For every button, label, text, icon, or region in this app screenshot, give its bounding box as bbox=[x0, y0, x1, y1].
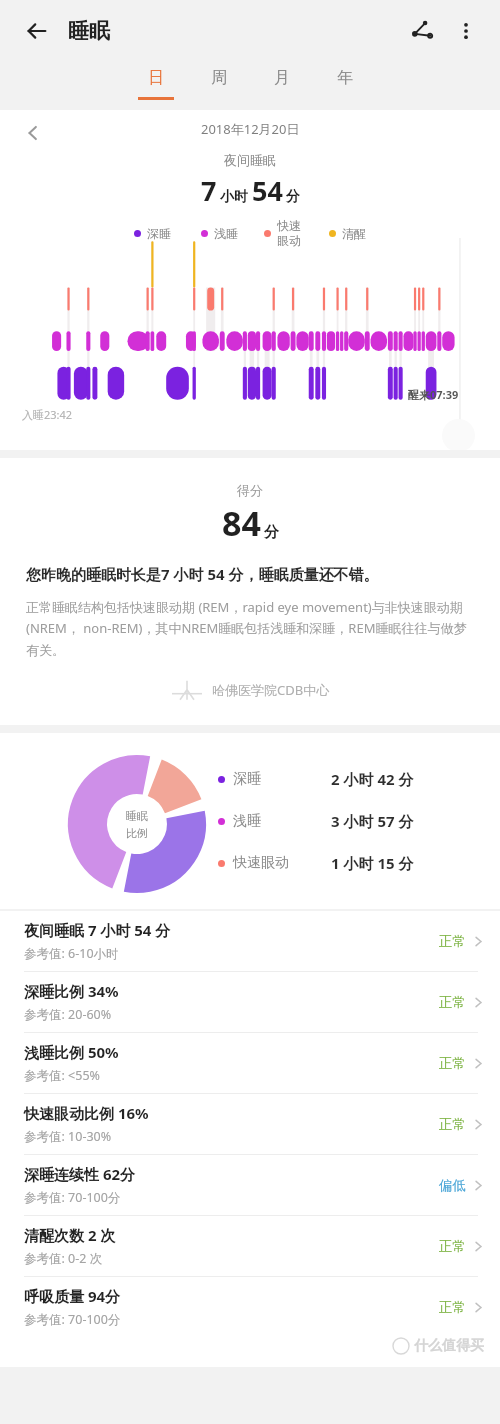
button[interactable]: 月 bbox=[250, 62, 313, 108]
staticText: 哈佛医学院CDB中心 bbox=[212, 681, 330, 699]
staticText: 7 bbox=[201, 172, 217, 209]
staticText: 正常 bbox=[439, 933, 466, 950]
staticText: 得分 bbox=[237, 482, 263, 498]
button[interactable]: Back bbox=[18, 12, 56, 50]
staticText: 正常 bbox=[439, 1238, 466, 1255]
staticText: 参考值: 70-100分 bbox=[24, 1189, 121, 1206]
button[interactable]: 浅睡比例 50% bbox=[0, 1033, 500, 1093]
staticText: 浅睡 bbox=[233, 812, 261, 830]
staticText: 浅睡 bbox=[214, 226, 238, 241]
button[interactable]: 夜间睡眠 7 小时 54 分 bbox=[0, 911, 500, 971]
button[interactable]: 周 bbox=[187, 62, 250, 108]
button[interactable]: 呼吸质量 94分 bbox=[0, 1277, 500, 1337]
staticText: 月 bbox=[274, 68, 290, 88]
staticText: 年 bbox=[337, 68, 353, 88]
staticText: 2 小时 42 分 bbox=[331, 769, 414, 789]
staticText: 偏低 bbox=[439, 1177, 466, 1194]
staticText: 参考值: 6-10小时 bbox=[24, 945, 119, 962]
staticText: 分 bbox=[264, 523, 279, 542]
button[interactable]: Share bbox=[402, 11, 442, 51]
staticText: 睡眠 bbox=[68, 18, 110, 44]
staticText: 2018年12月20日 bbox=[201, 120, 300, 138]
staticText: 参考值: 20-60% bbox=[24, 1006, 112, 1023]
staticText: 什么值得买 bbox=[414, 1337, 484, 1355]
staticText: 深睡 bbox=[233, 770, 261, 788]
staticText: 参考值: 0-2 次 bbox=[24, 1250, 103, 1267]
button[interactable]: 深睡连续性 62分 bbox=[0, 1155, 500, 1215]
staticText: 呼吸质量 94分 bbox=[24, 1286, 121, 1306]
staticText: 您昨晚的睡眠时长是7 小时 54 分，睡眠质量还不错。 bbox=[26, 564, 379, 584]
staticText: 眼动 bbox=[277, 233, 301, 248]
staticText: 正常 bbox=[439, 1299, 466, 1316]
staticText: 正常睡眠结构包括快速眼动期 (REM，rapid eye movement)与非… bbox=[26, 598, 478, 659]
button[interactable]: 日 bbox=[124, 62, 187, 108]
staticText: 分 bbox=[286, 188, 300, 206]
staticText: 清醒次数 2 次 bbox=[24, 1225, 116, 1245]
staticText: 1 小时 15 分 bbox=[331, 853, 414, 873]
button[interactable]: 清醒次数 2 次 bbox=[0, 1216, 500, 1276]
staticText: 周 bbox=[211, 68, 227, 88]
staticText: 54 bbox=[252, 172, 283, 209]
staticText: 日 bbox=[148, 68, 164, 88]
staticText: 比例 bbox=[126, 826, 148, 840]
staticText: 参考值: 10-30% bbox=[24, 1128, 112, 1145]
staticText: 正常 bbox=[439, 1116, 466, 1133]
button[interactable]: Previous day bbox=[16, 116, 50, 150]
staticText: 参考值: 70-100分 bbox=[24, 1311, 121, 1328]
staticText: 快速眼动 bbox=[233, 854, 289, 872]
staticText: 小时 bbox=[220, 188, 248, 206]
staticText: 睡眠 bbox=[126, 809, 148, 823]
staticText: 快速眼动比例 16% bbox=[24, 1103, 149, 1123]
button[interactable]: 年 bbox=[313, 62, 376, 108]
staticText: 正常 bbox=[439, 1055, 466, 1072]
staticText: 3 小时 57 分 bbox=[331, 811, 414, 831]
staticText: 清醒 bbox=[342, 226, 366, 241]
button[interactable]: More options bbox=[446, 11, 486, 51]
staticText: 深睡连续性 62分 bbox=[24, 1164, 136, 1184]
button[interactable]: 快速眼动比例 16% bbox=[0, 1094, 500, 1154]
staticText: 84 bbox=[222, 500, 261, 546]
staticText: 参考值: <55% bbox=[24, 1067, 100, 1084]
staticText: 深睡 bbox=[147, 226, 171, 241]
staticText: 醒来07:39 bbox=[408, 387, 459, 402]
staticText: 浅睡比例 50% bbox=[24, 1042, 119, 1062]
button[interactable]: 深睡比例 34% bbox=[0, 972, 500, 1032]
staticText: 深睡比例 34% bbox=[24, 981, 119, 1001]
staticText: 夜间睡眠 bbox=[224, 152, 276, 168]
staticText: 快速 bbox=[277, 218, 301, 233]
staticText: 入睡23:42 bbox=[22, 407, 73, 422]
staticText: 夜间睡眠 7 小时 54 分 bbox=[24, 920, 171, 940]
staticText: 正常 bbox=[439, 994, 466, 1011]
